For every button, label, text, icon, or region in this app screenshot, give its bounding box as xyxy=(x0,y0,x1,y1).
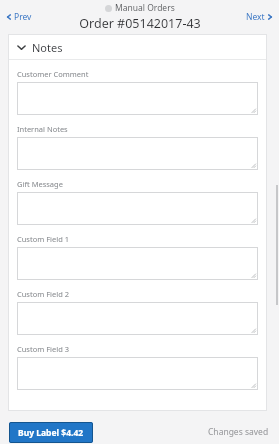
staticText: Order #05142017-43 xyxy=(79,15,201,32)
staticText: Custom Field 2 xyxy=(17,289,70,299)
button[interactable]: Prev xyxy=(6,11,32,23)
staticText: Manual Orders xyxy=(115,2,175,14)
button[interactable]: Next xyxy=(246,11,273,23)
staticText: Buy Label $4.42 xyxy=(18,427,84,439)
button[interactable]: Custom Field 1 xyxy=(17,247,258,280)
staticText: Custom Field 1 xyxy=(17,234,70,244)
button[interactable]: Custom Field 3 xyxy=(17,357,258,390)
staticText: Gift Message xyxy=(17,179,63,189)
button[interactable]: Buy Label $4.42 xyxy=(9,422,93,443)
staticText: Notes xyxy=(32,40,63,55)
button[interactable]: Notes xyxy=(8,34,267,60)
button[interactable]: Custom Field 2 xyxy=(17,302,258,335)
button[interactable]: Customer Comment xyxy=(17,82,258,115)
staticText: Changes saved xyxy=(208,426,269,438)
button[interactable]: Gift Message xyxy=(17,192,258,225)
staticText: Custom Field 3 xyxy=(17,344,70,354)
staticText: Customer Comment xyxy=(17,69,89,79)
staticText: Next xyxy=(246,11,265,23)
staticText: Internal Notes xyxy=(17,124,68,134)
staticText: Prev xyxy=(14,11,32,23)
button[interactable]: Internal Notes xyxy=(17,137,258,170)
